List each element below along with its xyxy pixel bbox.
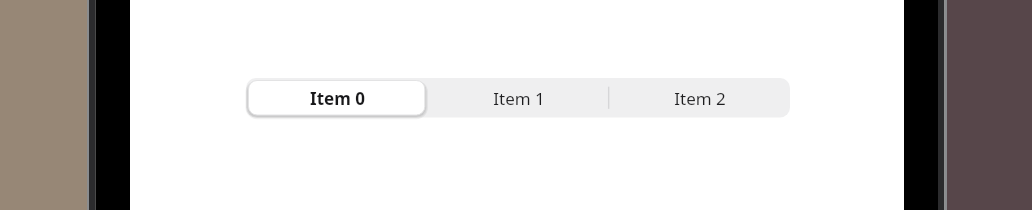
staticText: Item 1 [493,87,545,110]
button[interactable]: Item 2 [609,78,790,118]
staticText: Item 0 [310,87,365,110]
button[interactable]: Item 0 [246,78,428,118]
button[interactable]: Item 1 [428,78,609,118]
staticText: Item 2 [674,87,726,110]
